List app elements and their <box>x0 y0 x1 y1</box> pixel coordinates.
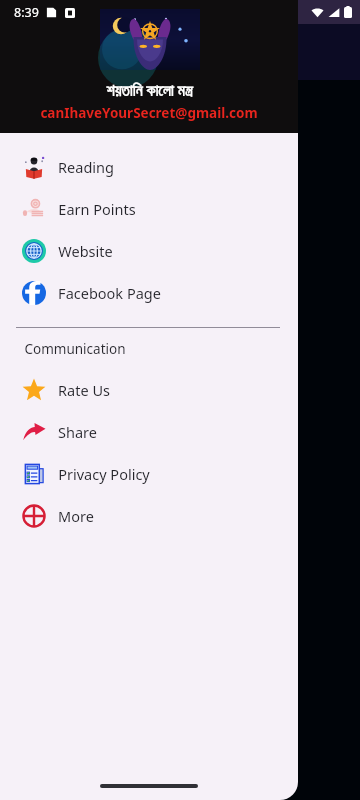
staticText: Share <box>58 422 97 442</box>
button[interactable]: Share <box>0 411 298 453</box>
other: Website <box>22 239 46 263</box>
button[interactable]: Rate Us <box>0 369 298 411</box>
staticText: Facebook Page <box>58 283 161 303</box>
button[interactable]: Website <box>0 230 298 272</box>
button[interactable]: Facebook Page <box>0 272 298 314</box>
other: Earn Points <box>22 197 46 221</box>
staticText: Reading <box>58 157 114 177</box>
staticText: Privacy Policy <box>58 464 150 484</box>
staticText: More <box>58 506 94 526</box>
button[interactable]: More <box>0 495 298 537</box>
staticText: canIhaveYourSecret@gmail.com <box>40 104 258 122</box>
other: Share <box>22 420 46 444</box>
staticText: 8:39 <box>14 4 39 21</box>
staticText: শয়তানি কালো মন্ত্র <box>106 79 193 100</box>
button[interactable]: Reading <box>0 146 298 188</box>
other: Rate Us <box>22 378 46 402</box>
button[interactable]: Earn Points <box>0 188 298 230</box>
other: Reading <box>22 155 46 179</box>
staticText: Communication <box>24 340 126 358</box>
other: Privacy Policy <box>22 462 46 486</box>
other: Facebook Page <box>22 281 46 305</box>
staticText: Rate Us <box>58 380 110 400</box>
other: More <box>22 504 46 528</box>
button[interactable] <box>100 9 200 70</box>
staticText: Earn Points <box>58 199 136 219</box>
staticText: Website <box>58 241 113 261</box>
button[interactable]: Privacy Policy <box>0 453 298 495</box>
